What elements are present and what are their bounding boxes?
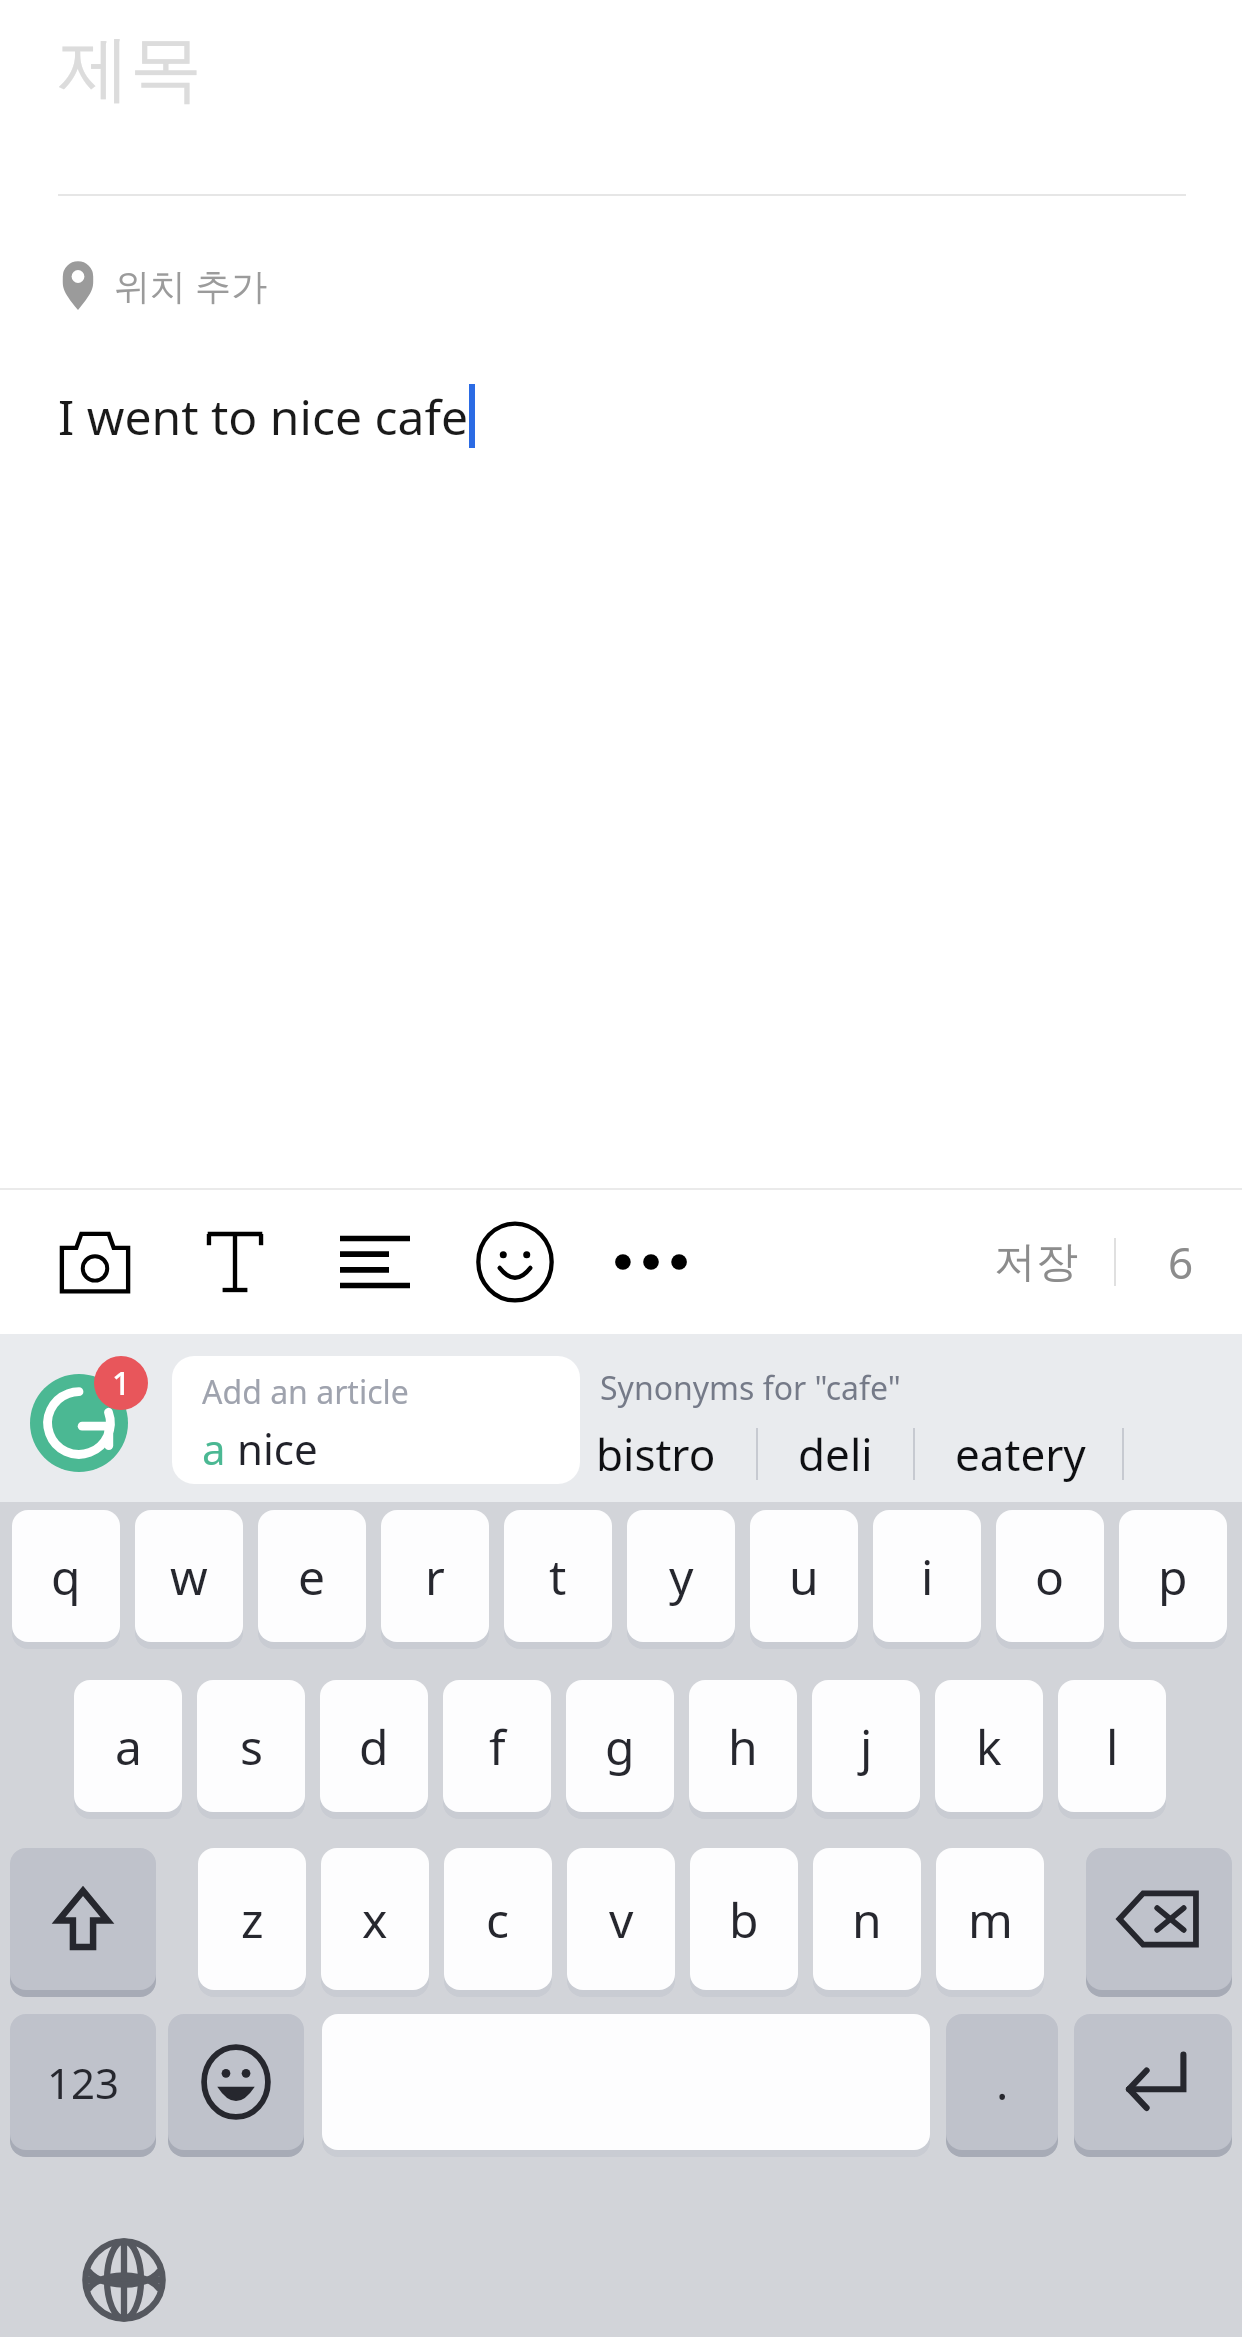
staticText: o [1035,1544,1065,1609]
staticText: a [115,1714,142,1779]
staticText: 위치 추가 [114,261,268,310]
button[interactable]: bistro [596,1424,716,1484]
staticText: y [669,1544,694,1609]
button[interactable]: r [381,1510,489,1642]
staticText: Synonyms for "cafe" [600,1366,901,1410]
staticText: l [1106,1714,1119,1779]
staticText: c [486,1887,510,1952]
button[interactable]: 위치 추가 [58,248,268,322]
staticText: deli [798,1424,873,1484]
button[interactable]: Add an article [172,1356,580,1484]
staticText: r [425,1544,445,1609]
button[interactable]: Add photo [40,1202,150,1322]
staticText: 123 [47,2054,120,2111]
button[interactable]: Alignment [320,1202,430,1322]
staticText: b [729,1887,759,1952]
staticText: q [51,1544,81,1609]
button[interactable]: i [873,1510,981,1642]
button[interactable]: z [198,1848,306,1990]
button[interactable]: a [74,1680,182,1812]
button[interactable]: h [689,1680,797,1812]
staticText: a [202,1420,237,1477]
staticText: 제목 [58,24,202,115]
staticText: s [240,1714,263,1779]
staticText: n [852,1887,882,1952]
staticText: w [170,1544,208,1609]
button[interactable]: s [197,1680,305,1812]
button[interactable]: j [812,1680,920,1812]
button[interactable]: Text style [180,1202,290,1322]
button[interactable]: eatery [955,1424,1086,1484]
button[interactable]: More options [596,1202,706,1322]
staticText: g [605,1714,635,1779]
staticText: t [549,1544,567,1609]
button[interactable]: deli [798,1424,873,1484]
staticText: z [241,1887,264,1952]
button[interactable]: 저장 [974,1210,1098,1315]
staticText: 1 [112,1361,131,1405]
staticText: p [1158,1544,1188,1609]
staticText: nice [237,1420,318,1477]
button[interactable]: d [320,1680,428,1812]
staticText: Add an article [202,1370,409,1414]
button[interactable]: f [443,1680,551,1812]
button[interactable]: n [813,1848,921,1990]
button[interactable]: e [258,1510,366,1642]
staticText: f [489,1714,506,1779]
staticText: 6 [1168,1232,1194,1292]
button[interactable]: l [1058,1680,1166,1812]
button[interactable]: p [1119,1510,1227,1642]
button[interactable]: Grammarly assistant [30,1374,128,1472]
staticText: x [362,1887,388,1952]
button[interactable]: o [996,1510,1104,1642]
staticText: . [996,2051,1009,2114]
button[interactable]: Emoji keyboard [168,2014,304,2150]
staticText: eatery [955,1424,1086,1484]
staticText: j [860,1714,873,1779]
staticText: d [359,1714,389,1779]
staticText: i [921,1544,934,1609]
button[interactable]: Shift [10,1848,156,1990]
button[interactable]: Backspace [1086,1848,1232,1990]
button[interactable]: y [627,1510,735,1642]
staticText: bistro [596,1424,716,1484]
button[interactable]: q [12,1510,120,1642]
button[interactable]: Enter [1074,2014,1232,2150]
button[interactable]: v [567,1848,675,1990]
staticText: k [976,1714,1002,1779]
button[interactable]: g [566,1680,674,1812]
button[interactable]: t [504,1510,612,1642]
button[interactable]: . [946,2014,1058,2150]
staticText: 저장 [994,1236,1078,1289]
staticText: m [968,1887,1013,1952]
staticText: I went to nice cafe [58,384,469,449]
staticText: e [298,1544,326,1609]
button[interactable]: c [444,1848,552,1990]
button[interactable]: Insert emoji [460,1202,570,1322]
button[interactable]: k [935,1680,1043,1812]
staticText: v [609,1887,634,1952]
staticText: u [789,1544,819,1609]
button[interactable]: 123 [10,2014,156,2150]
staticText: h [728,1714,758,1779]
button[interactable]: w [135,1510,243,1642]
button[interactable]: u [750,1510,858,1642]
button[interactable]: x [321,1848,429,1990]
button[interactable]: m [936,1848,1044,1990]
button[interactable]: b [690,1848,798,1990]
button[interactable]: Change keyboard language [62,2218,186,2337]
